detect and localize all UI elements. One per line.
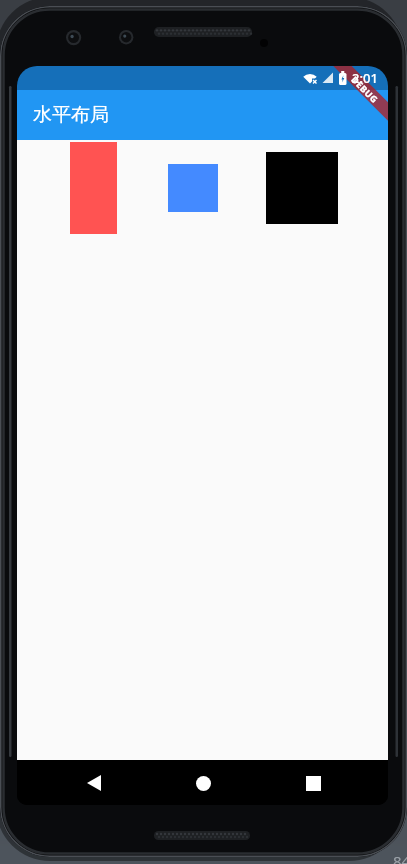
staticText: 84 (393, 851, 407, 864)
staticText: 2:01 (352, 69, 378, 87)
button[interactable] (79, 768, 109, 798)
button[interactable] (188, 768, 218, 798)
staticText: 水平布局 (33, 103, 109, 127)
staticText: DEBUG (349, 73, 381, 105)
button[interactable] (298, 768, 328, 798)
